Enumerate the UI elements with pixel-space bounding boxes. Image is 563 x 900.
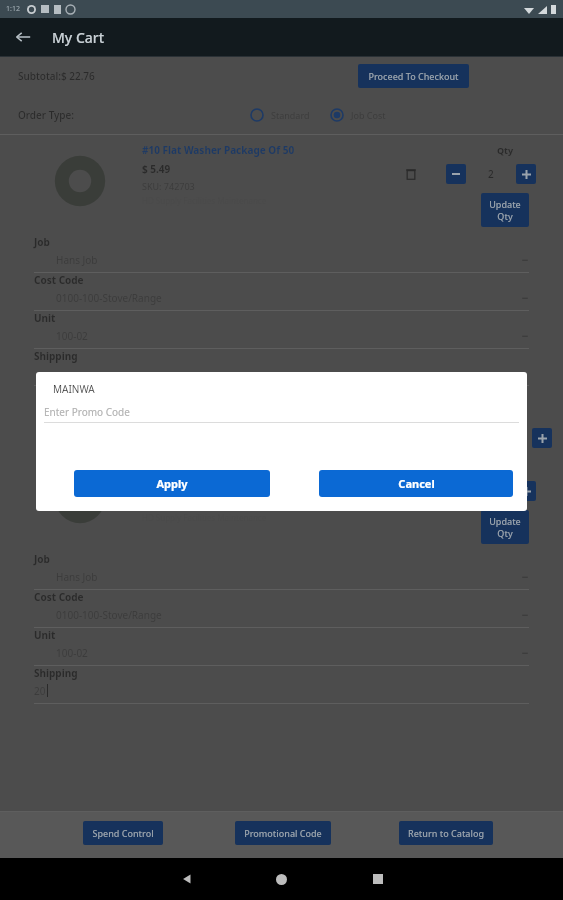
staticText: Proceed To Checkout <box>368 70 459 82</box>
button[interactable]: Increase quantity <box>516 164 536 184</box>
staticText: #10 Flat Washer Package Of 50 <box>142 460 295 474</box>
button[interactable]: Update Qty <box>481 510 529 544</box>
button[interactable]: Spend Control <box>83 821 163 845</box>
staticText: My Cart <box>52 28 105 47</box>
button[interactable]: Decrease quantity <box>446 481 466 501</box>
staticText: Cost Code <box>34 273 84 287</box>
staticText: SKU: 742703 <box>142 180 195 192</box>
staticText: 20 <box>34 684 46 698</box>
button[interactable]: Apply <box>74 470 270 497</box>
staticText: Order Type: <box>18 108 74 122</box>
staticText: Cost Code <box>34 590 84 604</box>
staticText: $ 5.49 <box>142 479 171 493</box>
staticText: Unit <box>34 311 56 325</box>
staticText: Job <box>34 552 50 566</box>
staticText: Shipping <box>34 349 78 363</box>
staticText: Shipping <box>34 666 78 680</box>
staticText: $ 5.49 <box>142 162 171 176</box>
staticText: MAINWA <box>53 382 95 396</box>
button[interactable]: Cancel <box>319 470 513 497</box>
button[interactable]: Increase quantity <box>516 481 536 501</box>
staticText: Qty <box>497 144 514 156</box>
staticText: 2 <box>488 167 494 181</box>
staticText: Job Cost <box>351 109 386 121</box>
button[interactable]: Standard <box>250 108 310 122</box>
button[interactable]: Decrease quantity <box>446 164 466 184</box>
button[interactable]: Proceed To Checkout <box>358 64 469 88</box>
staticText: 1:12 <box>6 4 20 14</box>
staticText: Apply <box>156 476 188 491</box>
button[interactable]: Promotional Code <box>235 821 331 845</box>
staticText: Standard <box>271 109 310 121</box>
staticText: Promotional Code <box>244 827 322 839</box>
staticText: Update Qty <box>489 515 521 539</box>
staticText: Subtotal:$ 22.76 <box>18 69 95 83</box>
button[interactable]: Update Qty <box>481 193 529 227</box>
button[interactable]: Delete item <box>400 480 422 502</box>
button[interactable]: Increase quantity <box>532 428 552 448</box>
staticText: #10 Flat Washer Package Of 50 <box>142 143 295 157</box>
staticText: Qty <box>497 461 514 473</box>
button[interactable]: Delete item <box>400 163 422 185</box>
button[interactable]: Job Cost <box>330 108 386 122</box>
staticText: Unit <box>34 628 56 642</box>
staticText: Return to Catalog <box>408 827 484 839</box>
staticText: Spend Control <box>92 827 154 839</box>
staticText: 2 <box>488 484 494 498</box>
staticText: Cancel <box>398 476 435 491</box>
staticText: Enter Promo Code <box>44 405 130 419</box>
staticText: Update Qty <box>489 198 521 222</box>
button[interactable]: Return to Catalog <box>399 821 493 845</box>
staticText: Job <box>34 235 50 249</box>
button[interactable]: Back <box>8 22 38 52</box>
